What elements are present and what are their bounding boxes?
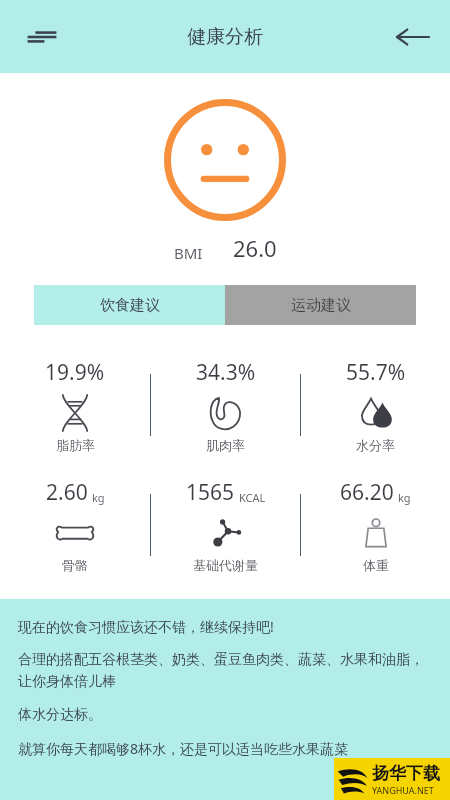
staticText: 2.60	[46, 478, 88, 507]
button[interactable]: 1565	[151, 473, 300, 577]
staticText: kg	[398, 490, 411, 505]
staticText: 骨骼	[62, 557, 88, 573]
staticText: BMI	[174, 243, 203, 263]
staticText: 19.9%	[45, 358, 105, 387]
staticText: 肌肉率	[206, 437, 245, 453]
staticText: 饮食建议	[100, 296, 160, 315]
button[interactable]: 34.3%	[151, 353, 300, 457]
staticText: 66.20	[340, 478, 394, 507]
staticText: 脂肪率	[56, 437, 95, 453]
button[interactable]: Back	[388, 13, 436, 61]
staticText: 运动建议	[291, 296, 351, 315]
staticText: 扬华下载	[372, 763, 440, 784]
button[interactable]: 运动建议	[225, 285, 416, 325]
staticText: 体重	[363, 557, 389, 573]
button[interactable]: 19.9%	[0, 353, 150, 457]
staticText: 健康分析	[187, 25, 263, 49]
staticText: 基础代谢量	[193, 557, 258, 573]
staticText: YANGHUA.NET	[372, 784, 434, 796]
staticText: KCAL	[239, 490, 266, 505]
staticText: 1565	[186, 478, 235, 507]
button[interactable]: 饮食建议	[34, 285, 225, 325]
staticText: 26.0	[233, 233, 277, 263]
staticText: kg	[92, 490, 105, 505]
staticText: 合理的搭配五谷根茎类、奶类、蛋豆鱼肉类、蔬菜、水果和油脂，让你身体倍儿棒	[18, 651, 432, 691]
staticText: 34.3%	[196, 358, 256, 387]
staticText: 就算你每天都喝够8杯水，还是可以适当吃些水果蔬菜	[18, 739, 349, 758]
staticText: 现在的饮食习惯应该还不错，继续保持吧!	[18, 617, 274, 636]
button[interactable]: 66.20	[301, 473, 450, 577]
staticText: 55.7%	[346, 358, 406, 387]
button[interactable]: Menu	[18, 13, 66, 61]
staticText: 体水分达标。	[18, 706, 102, 724]
button[interactable]: 2.60	[0, 473, 150, 577]
staticText: 水分率	[356, 437, 395, 453]
button[interactable]: 55.7%	[301, 353, 450, 457]
